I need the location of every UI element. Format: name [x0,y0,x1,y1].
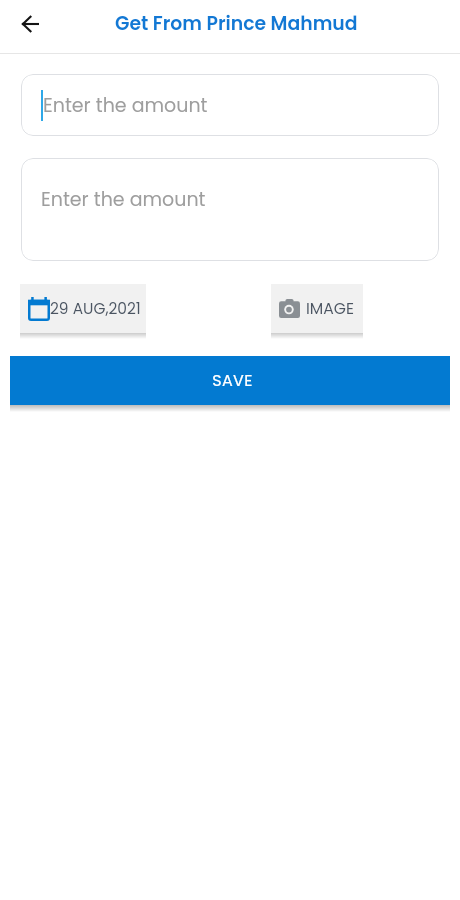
button[interactable]: Back [13,7,47,41]
staticText: 29 AUG,2021 [50,298,141,320]
staticText: Get From Prince Mahmud [115,10,358,36]
button[interactable]: IMAGE [271,284,363,333]
button[interactable]: Enter the amount [21,74,439,136]
button[interactable]: Enter the amount [21,158,439,261]
staticText: SAVE [212,369,253,391]
button[interactable]: SAVE [10,356,450,405]
staticText: Enter the amount [41,186,206,213]
staticText: IMAGE [306,298,354,320]
staticText: Enter the amount [43,92,208,119]
button[interactable]: 29 AUG,2021 [20,284,146,333]
